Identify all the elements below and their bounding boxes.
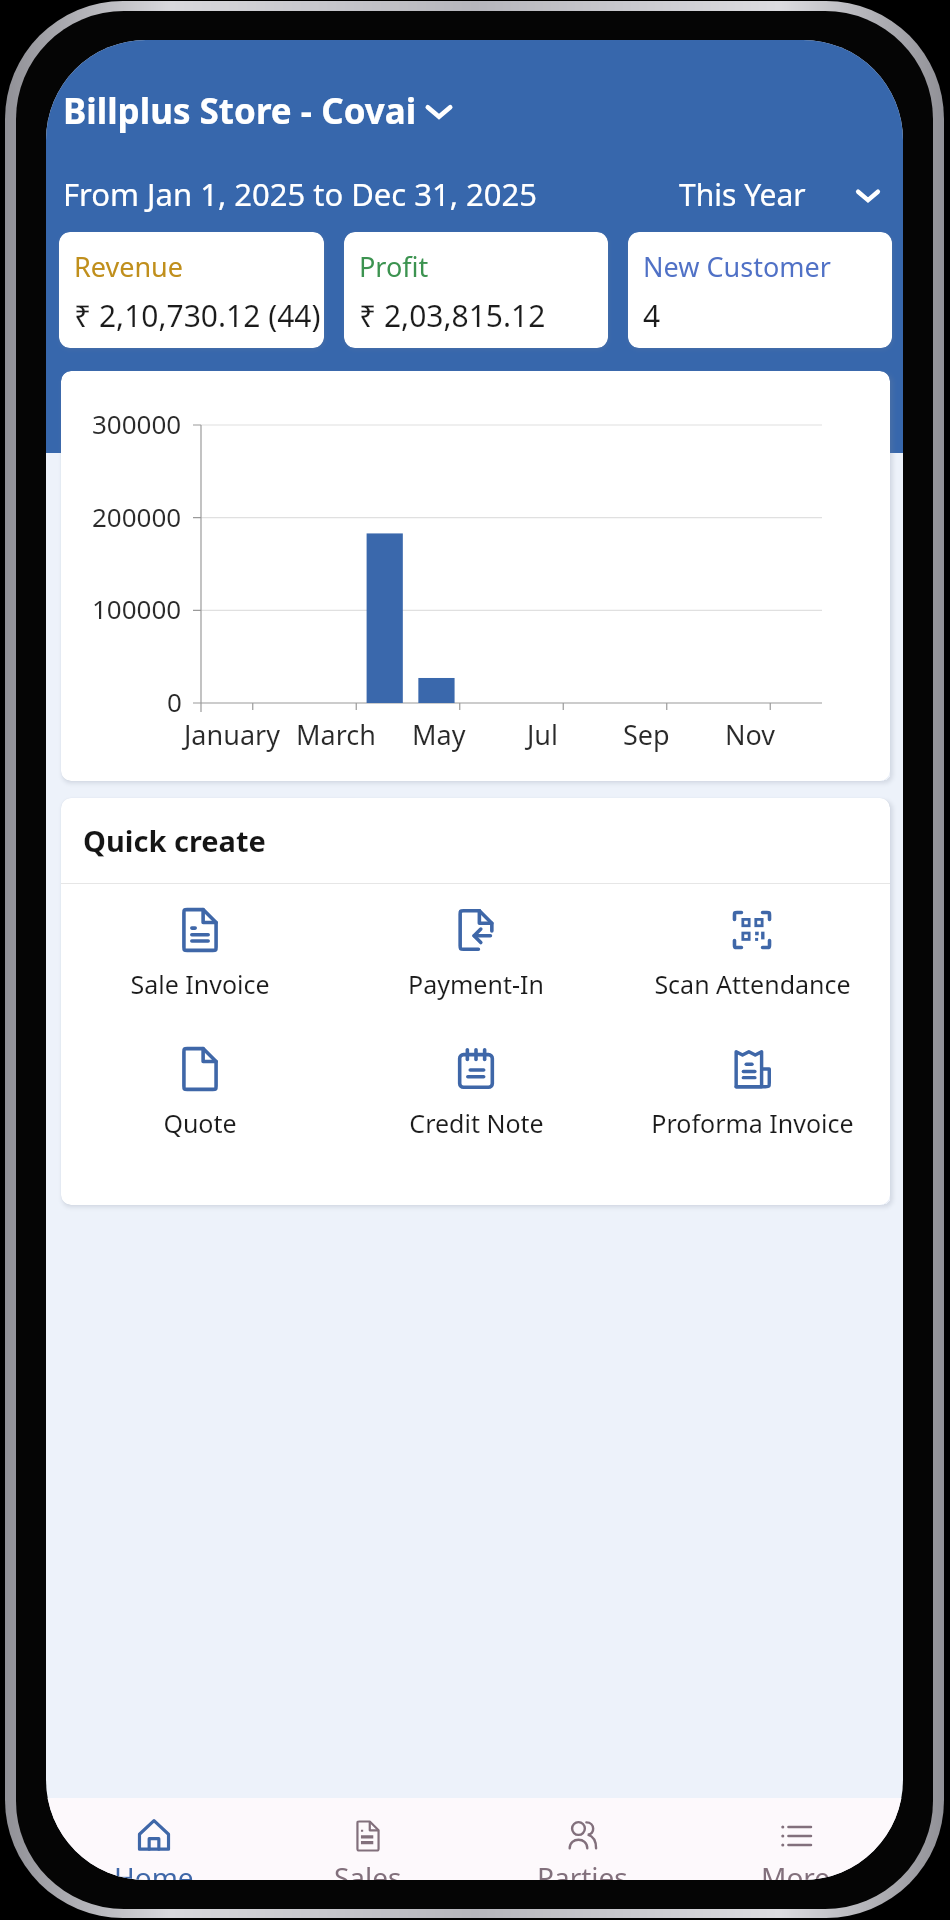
button[interactable]: Proforma Invoice <box>614 1045 890 1140</box>
staticText: 300000 <box>92 406 182 441</box>
staticText: New Customer <box>643 248 831 285</box>
staticText: January <box>184 716 280 753</box>
staticText: 4 <box>643 295 661 336</box>
button[interactable]: Quote <box>61 1045 338 1140</box>
other: Change period <box>853 180 883 210</box>
button[interactable]: New Customer <box>628 232 892 348</box>
staticText: Revenue <box>74 248 184 285</box>
staticText: This Year <box>679 174 806 215</box>
staticText: Nov <box>725 716 776 753</box>
staticText: Billplus Store - Covai <box>63 87 417 135</box>
staticText: Proforma Invoice <box>651 1106 854 1140</box>
button[interactable]: Credit Note <box>338 1045 614 1140</box>
button[interactable]: Revenue <box>59 232 324 348</box>
staticText: 200000 <box>92 499 182 534</box>
staticText: Payment-In <box>408 967 544 1001</box>
staticText: ₹ 2,03,815.12 <box>359 295 546 336</box>
staticText: Jul <box>527 716 559 753</box>
staticText: Profit <box>359 248 429 285</box>
staticText: 100000 <box>92 591 182 626</box>
staticText: Sep <box>623 716 670 753</box>
button[interactable]: Scan Attendance <box>614 906 890 1001</box>
button[interactable]: This Year <box>679 174 883 215</box>
staticText: Sale Invoice <box>130 967 270 1001</box>
button[interactable]: Sale Invoice <box>61 906 338 1001</box>
staticText: Quote <box>163 1106 237 1140</box>
button[interactable]: More <box>689 1798 903 1880</box>
staticText: More <box>761 1858 831 1880</box>
button[interactable]: Profit <box>344 232 608 348</box>
button[interactable]: Parties <box>475 1798 689 1880</box>
other: Switch store <box>422 94 456 128</box>
staticText: Scan Attendance <box>654 967 851 1001</box>
staticText: Parties <box>537 1858 628 1880</box>
staticText: From Jan 1, 2025 to Dec 31, 2025 <box>63 173 538 215</box>
staticText: Credit Note <box>409 1106 544 1140</box>
button[interactable]: Home <box>46 1798 261 1880</box>
staticText: Quick create <box>83 821 266 860</box>
button[interactable]: Sales <box>261 1798 475 1880</box>
staticText: ₹ 2,10,730.12 (44) <box>74 295 321 336</box>
button[interactable]: Payment-In <box>338 906 614 1001</box>
staticText: Sales <box>334 1858 402 1880</box>
button[interactable]: Billplus Store - Covai <box>63 87 903 135</box>
staticText: May <box>412 716 466 753</box>
staticText: Home <box>114 1858 194 1880</box>
staticText: 0 <box>167 684 182 719</box>
staticText: March <box>296 716 376 753</box>
